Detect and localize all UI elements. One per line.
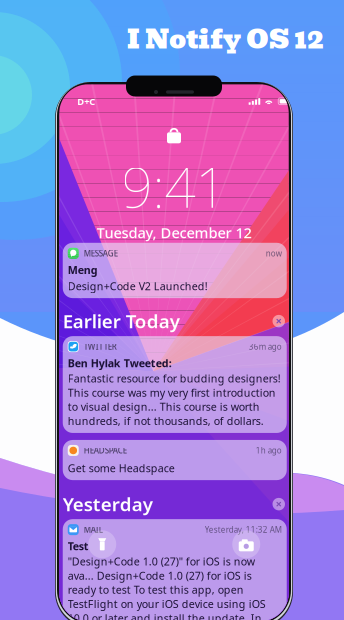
staticText: Ben Hylak Tweeted: [68, 356, 172, 370]
staticText: HEADSPACE [84, 445, 127, 456]
button[interactable]: Camera [231, 529, 261, 559]
staticText: Tuesday, December 12 [96, 223, 251, 242]
button[interactable]: HEADSPACE [63, 440, 287, 480]
staticText: Meng [68, 263, 98, 277]
staticText: I Notify OS 12 [127, 18, 323, 60]
staticText: "Design+Code 1.0 (27)" for iOS is now av… [68, 554, 266, 620]
staticText: 9:41 [121, 150, 226, 223]
staticText: TWITTER [84, 341, 117, 352]
staticText: MAIL [84, 524, 103, 535]
staticText: Get some Headspace [68, 461, 175, 475]
staticText: D+C [77, 95, 95, 107]
staticText: now [266, 248, 282, 259]
button[interactable]: Clear notifications [271, 496, 287, 512]
button[interactable]: Flashlight [87, 529, 117, 559]
staticText: MESSAGE [84, 248, 118, 259]
staticText: Design+Code V2 Launched! [68, 279, 208, 293]
staticText: Fantastic resource for budding designers… [68, 371, 281, 428]
button[interactable]: TWITTER [63, 336, 287, 433]
staticText: Earlier Today [63, 309, 180, 333]
button[interactable]: Clear notifications [271, 313, 287, 329]
staticText: Yesterday [63, 492, 153, 516]
staticText: 1h ago [256, 445, 282, 456]
staticText: 36m ago [249, 341, 282, 352]
button[interactable]: MAIL [63, 519, 287, 620]
staticText: Yesterday, 11:32 AM [205, 524, 282, 535]
staticText: Test [68, 539, 89, 553]
button[interactable]: MESSAGE [63, 243, 287, 298]
